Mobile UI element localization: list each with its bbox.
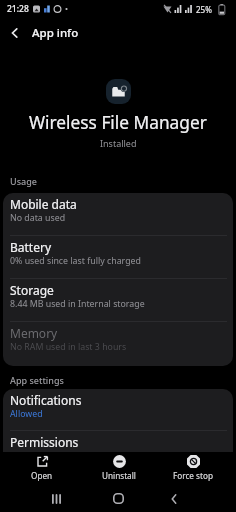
button[interactable]: Notifications	[3, 389, 233, 430]
staticText: Open	[31, 470, 53, 481]
button[interactable]	[98, 485, 138, 512]
staticText: No data used	[10, 212, 66, 224]
button[interactable]: Mobile data	[3, 193, 233, 235]
staticText: Battery	[10, 239, 52, 255]
button[interactable]	[154, 485, 194, 512]
staticText: 21:28	[7, 3, 29, 15]
staticText: Storage	[10, 282, 54, 298]
staticText: 25%	[196, 4, 212, 15]
button[interactable]	[37, 485, 77, 512]
staticText: Mobile data	[10, 196, 77, 212]
button[interactable]: Uninstall	[84, 452, 154, 485]
staticText: Force stop	[173, 470, 213, 481]
staticText: No RAM used in last 3 hours	[10, 341, 127, 353]
staticText: Storage	[10, 450, 43, 462]
staticText: Memory	[10, 325, 58, 341]
staticText: Usage	[10, 175, 37, 187]
staticText: Allowed	[10, 408, 43, 420]
button[interactable]: Force stop	[158, 452, 228, 485]
button[interactable]: Permissions	[3, 431, 233, 472]
staticText: 0% used since last fully charged	[10, 255, 141, 267]
staticText: Wireless File Manager	[29, 111, 207, 133]
staticText: Notifications	[10, 392, 82, 408]
staticText: Installed	[100, 137, 137, 149]
staticText: Uninstall	[102, 470, 136, 481]
button[interactable]: Open	[7, 452, 77, 485]
staticText: Permissions	[10, 434, 79, 450]
button[interactable]: Memory	[3, 322, 233, 366]
staticText: App settings	[10, 374, 64, 386]
staticText: 8.44 MB used in Internal storage	[10, 298, 145, 310]
button[interactable]	[0, 18, 30, 48]
button[interactable]: Battery	[3, 236, 233, 278]
staticText: App info	[32, 25, 79, 41]
button[interactable]: Storage	[3, 279, 233, 321]
